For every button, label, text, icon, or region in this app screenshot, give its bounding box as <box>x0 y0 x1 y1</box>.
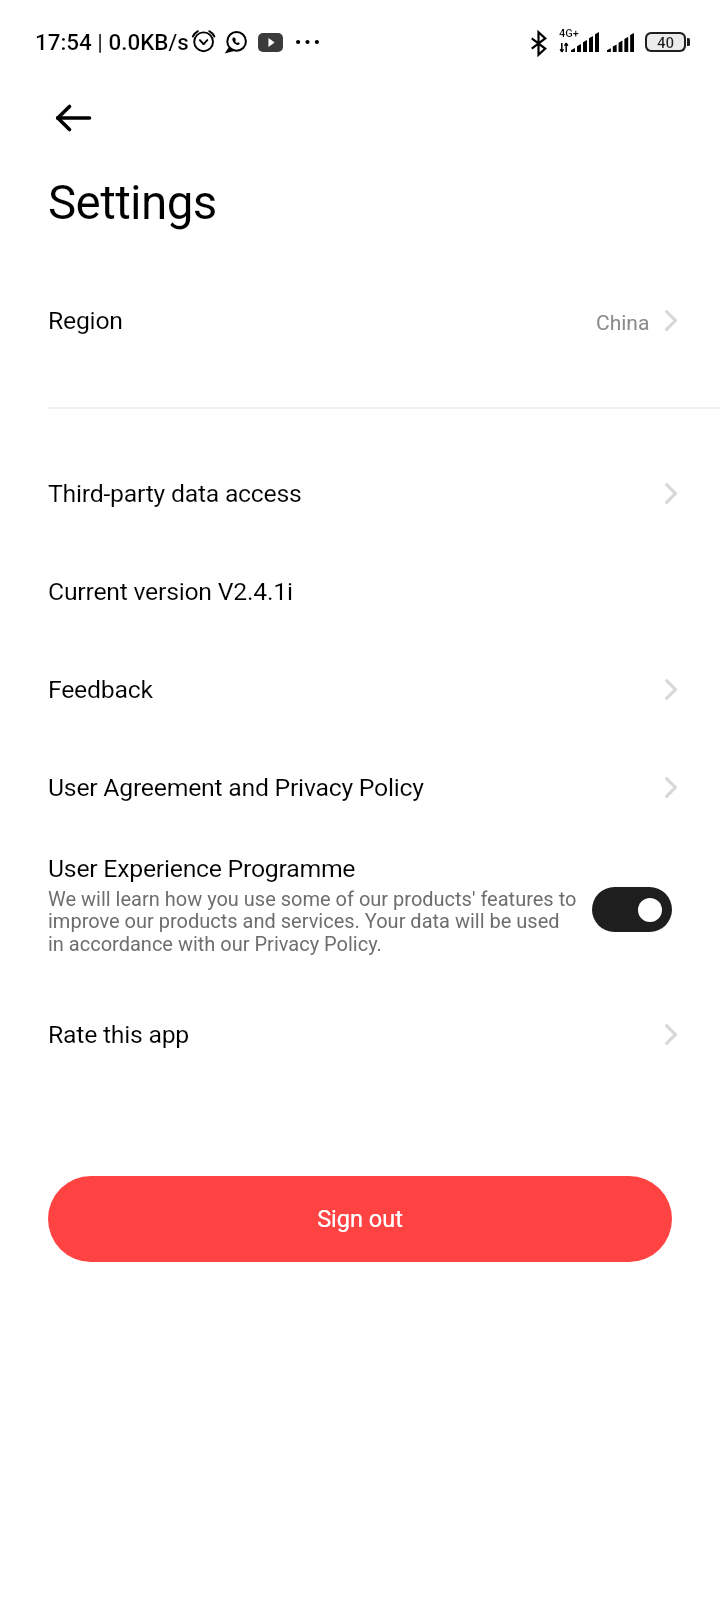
staticText: User Experience Programme <box>48 854 356 883</box>
button[interactable]: User Agreement and Privacy Policy <box>0 738 720 836</box>
button[interactable]: User Experience Programme switch, on <box>592 887 672 932</box>
staticText: Third-party data access <box>48 479 302 508</box>
button[interactable]: Current version V2.4.1i <box>0 542 720 640</box>
button[interactable]: Third-party data access <box>0 444 720 542</box>
staticText: 4G+ <box>559 27 579 40</box>
button[interactable]: Back <box>49 94 97 142</box>
button[interactable]: Region <box>0 269 720 371</box>
staticText: Rate this app <box>48 1020 190 1049</box>
staticText: Sign out <box>317 1205 403 1233</box>
button[interactable]: User Experience Programme <box>0 833 720 973</box>
button[interactable]: Feedback <box>0 640 720 738</box>
staticText: Settings <box>48 175 217 231</box>
staticText: Current version V2.4.1i <box>48 577 293 606</box>
staticText: We will learn how you use some of our pr… <box>48 887 580 956</box>
staticText: Feedback <box>48 675 153 704</box>
staticText: Region <box>48 306 123 335</box>
staticText: China <box>596 311 650 336</box>
staticText: User Agreement and Privacy Policy <box>48 773 424 802</box>
button[interactable]: Sign out <box>48 1176 672 1262</box>
staticText: 17:54 | 0.0KB/s <box>35 29 189 55</box>
staticText: 40 <box>657 34 675 50</box>
button[interactable]: Rate this app <box>0 985 720 1083</box>
